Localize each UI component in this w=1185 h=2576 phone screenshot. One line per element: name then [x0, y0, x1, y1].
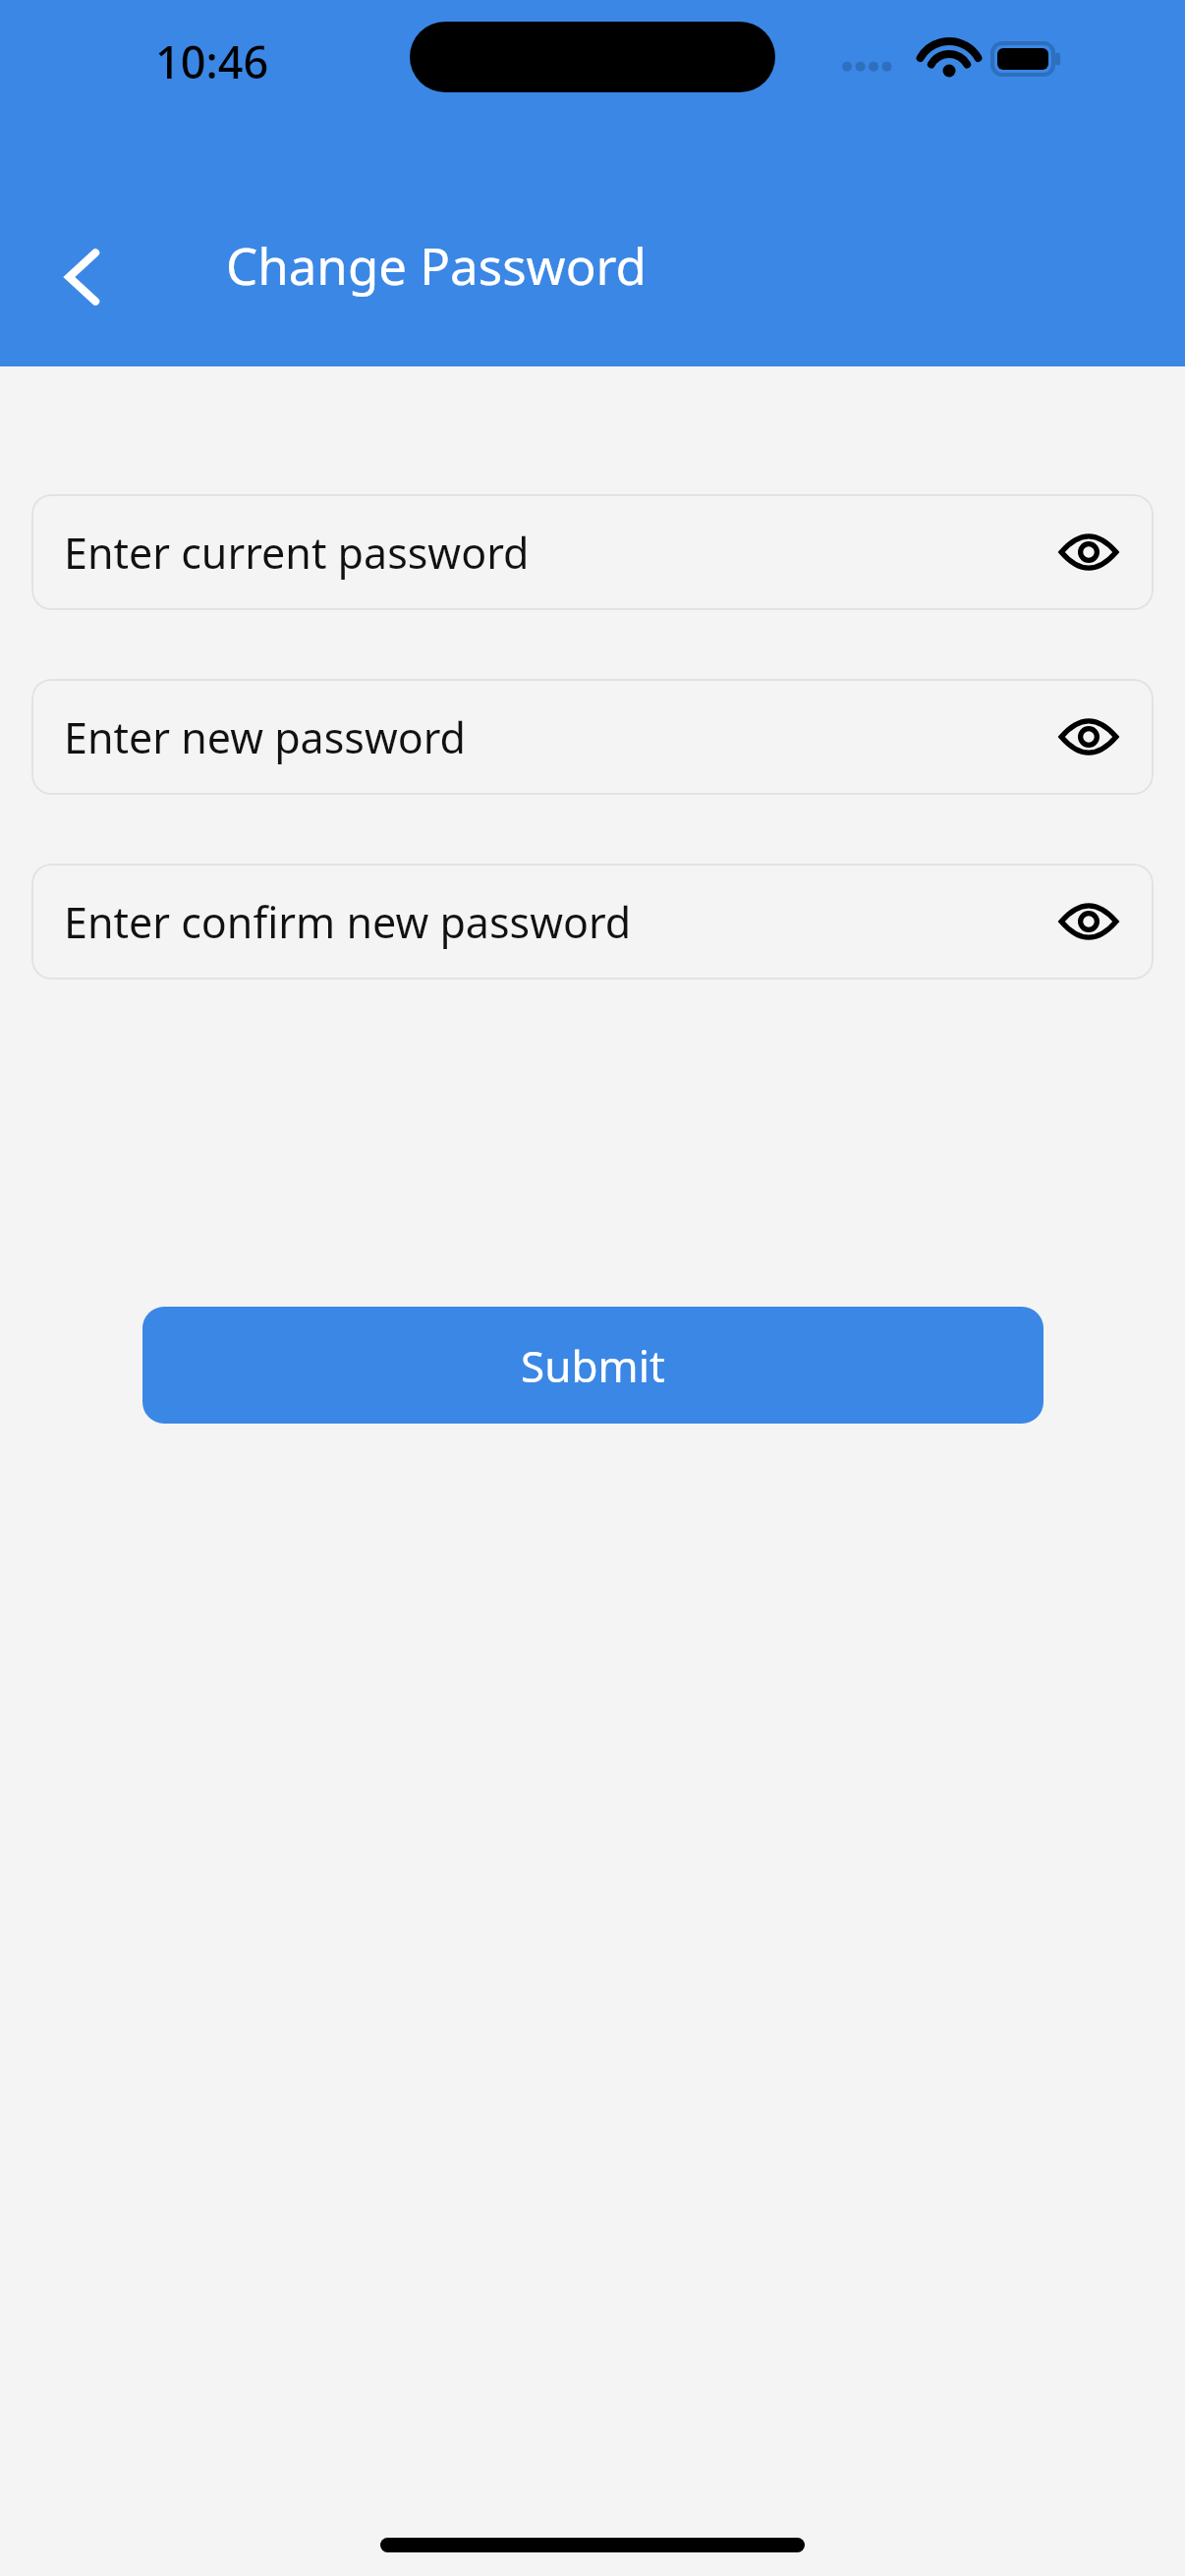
button[interactable]: Show password	[1047, 880, 1130, 963]
staticText: Enter current password	[64, 524, 530, 582]
button[interactable]: Enter confirm new password	[31, 864, 1154, 980]
staticText: Enter confirm new password	[64, 893, 632, 951]
staticText: Enter new password	[64, 708, 467, 766]
button[interactable]: Enter new password	[31, 679, 1154, 795]
staticText: Change Password	[226, 231, 647, 299]
button[interactable]: Show password	[1047, 511, 1130, 593]
button[interactable]: Back	[26, 218, 143, 336]
staticText: 10:46	[155, 31, 269, 91]
button[interactable]: Show password	[1047, 696, 1130, 778]
button[interactable]: Submit	[142, 1307, 1044, 1424]
staticText: Submit	[521, 1336, 665, 1395]
button[interactable]: Enter current password	[31, 494, 1154, 610]
